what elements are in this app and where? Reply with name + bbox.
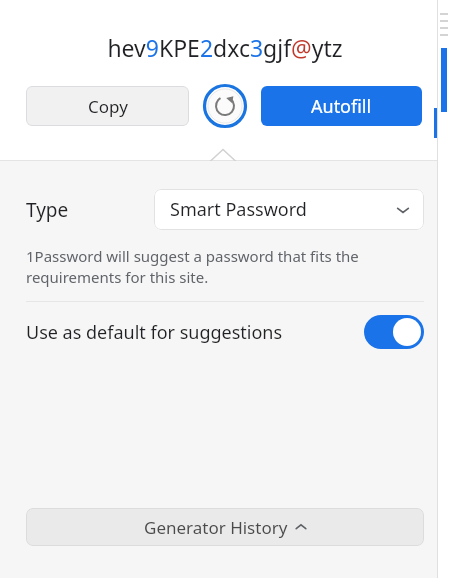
staticText: 1Password will suggest a password that f… — [26, 246, 414, 288]
button[interactable]: Smart Password — [154, 189, 424, 230]
staticText: Smart Password — [170, 197, 307, 222]
other: Use as default for suggestions toggle — [364, 315, 424, 349]
button[interactable]: Copy — [26, 86, 189, 126]
staticText: hev9KPE2dxc3gjf@ytz — [107, 32, 343, 63]
staticText: Generator History — [144, 516, 288, 539]
staticText: Autofill — [311, 94, 372, 119]
button[interactable]: Generator History — [26, 508, 424, 546]
button[interactable]: Regenerate password — [203, 84, 247, 128]
staticText: Type — [26, 197, 69, 223]
button[interactable]: Use as default for suggestions — [0, 302, 450, 362]
staticText: Copy — [88, 95, 128, 118]
staticText: Use as default for suggestions — [26, 320, 283, 345]
button[interactable]: Autofill — [261, 86, 422, 126]
